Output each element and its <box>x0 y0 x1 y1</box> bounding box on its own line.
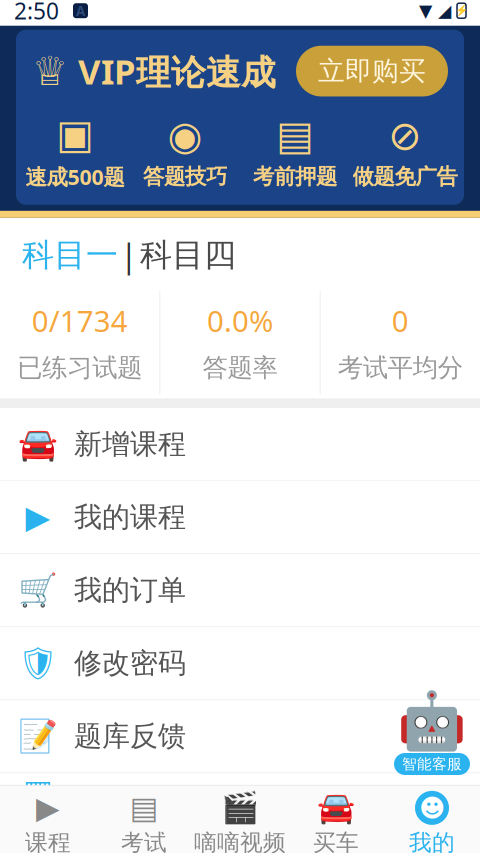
staticText: 答题率 <box>202 352 277 383</box>
staticText: 课程 <box>25 829 71 853</box>
staticText: VIP理论速成 <box>78 48 276 94</box>
button[interactable]: 立即购买 <box>296 46 448 96</box>
staticText: ▤ <box>276 113 314 158</box>
button[interactable]: 🚘 <box>288 786 384 853</box>
staticText: ☻ <box>419 793 445 822</box>
button[interactable]: ▶ <box>0 786 96 853</box>
staticText: ◢ <box>438 1 451 21</box>
button[interactable]: ☻ <box>384 786 480 853</box>
button[interactable]: ▤ <box>96 786 192 853</box>
staticText: ▶ <box>25 499 50 535</box>
staticText: 做题免广告 <box>352 163 457 190</box>
button[interactable]: 🛡 <box>0 627 480 700</box>
staticText: 已练习试题 <box>17 352 142 383</box>
staticText: ▦ <box>23 773 53 810</box>
staticText: ⚡ <box>455 5 468 17</box>
staticText: ♕ <box>32 48 68 94</box>
button[interactable]: 科目一 <box>22 235 118 275</box>
staticText: 答题技巧 <box>143 163 227 190</box>
staticText: 考试 <box>121 829 167 853</box>
staticText: ▶ <box>36 790 60 825</box>
staticText: 题库反馈 <box>74 719 186 753</box>
staticText: ▼ <box>419 1 432 21</box>
staticText: 科目四 <box>140 235 236 275</box>
staticText: 智能客服 <box>402 755 462 773</box>
staticText: 🚘 <box>317 790 355 825</box>
staticText: 我的 <box>409 829 455 853</box>
button[interactable]: 🛒 <box>0 554 480 627</box>
staticText: 我的订单 <box>74 573 186 607</box>
staticText: ⊘ <box>388 113 422 158</box>
button[interactable]: ▶ <box>0 481 480 554</box>
staticText: 0/1734 <box>32 301 128 340</box>
staticText: 考前押题 <box>253 163 337 190</box>
staticText: ▣ <box>56 112 94 157</box>
staticText: 新增课程 <box>74 427 186 461</box>
staticText: | <box>120 234 138 276</box>
staticText: 立即购买 <box>318 55 426 87</box>
staticText: 2:50 <box>14 0 59 26</box>
staticText: ◉ <box>167 113 202 158</box>
staticText: 速成500题 <box>25 162 124 191</box>
button[interactable]: 智能客服 <box>394 689 480 775</box>
staticText: 0 <box>392 301 409 340</box>
staticText: A <box>76 2 85 20</box>
staticText: 0.0% <box>207 301 273 340</box>
staticText: 买车 <box>313 829 359 853</box>
staticText: 🚘 <box>18 426 58 463</box>
staticText: 🛡 <box>17 645 58 682</box>
button[interactable]: 科目四 <box>140 235 236 275</box>
staticText: ▤ <box>129 790 158 825</box>
staticText: 🤖 <box>397 689 467 753</box>
button[interactable]: 🎬 <box>192 786 288 853</box>
button[interactable]: 🚘 <box>0 408 480 481</box>
staticText: 🎬 <box>221 790 259 825</box>
staticText: 考试平均分 <box>338 352 463 383</box>
button[interactable]: 📝 <box>0 700 480 773</box>
staticText: 科目一 <box>22 235 118 275</box>
staticText: 我的课程 <box>74 500 186 534</box>
staticText: 嘀嘀视频 <box>194 829 286 853</box>
staticText: 🛒 <box>18 572 58 609</box>
staticText: 修改密码 <box>74 646 186 680</box>
staticText: 📝 <box>18 718 58 755</box>
